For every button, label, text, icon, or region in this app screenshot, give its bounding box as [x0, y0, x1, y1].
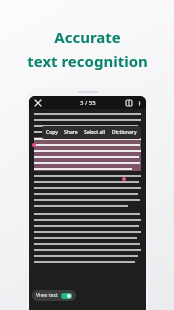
staticText: Select all: [84, 129, 106, 136]
button[interactable]: Share: [64, 129, 78, 136]
staticText: text recognition: [27, 51, 148, 71]
button[interactable]: Select all: [84, 129, 106, 136]
button[interactable]: Close: [32, 97, 43, 108]
staticText: Dictionary: [112, 129, 137, 136]
button[interactable]: Dictionary: [112, 129, 137, 136]
button[interactable]: Copy: [46, 129, 58, 136]
staticText: Accurate: [54, 27, 121, 47]
staticText: 3 / 55: [80, 99, 96, 107]
staticText: Share: [64, 129, 78, 136]
button[interactable]: View text: [32, 290, 76, 301]
staticText: View text: [36, 292, 58, 299]
button[interactable]: Reading mode: [123, 97, 134, 108]
staticText: Copy: [46, 129, 58, 136]
button[interactable]: More options: [134, 98, 144, 108]
